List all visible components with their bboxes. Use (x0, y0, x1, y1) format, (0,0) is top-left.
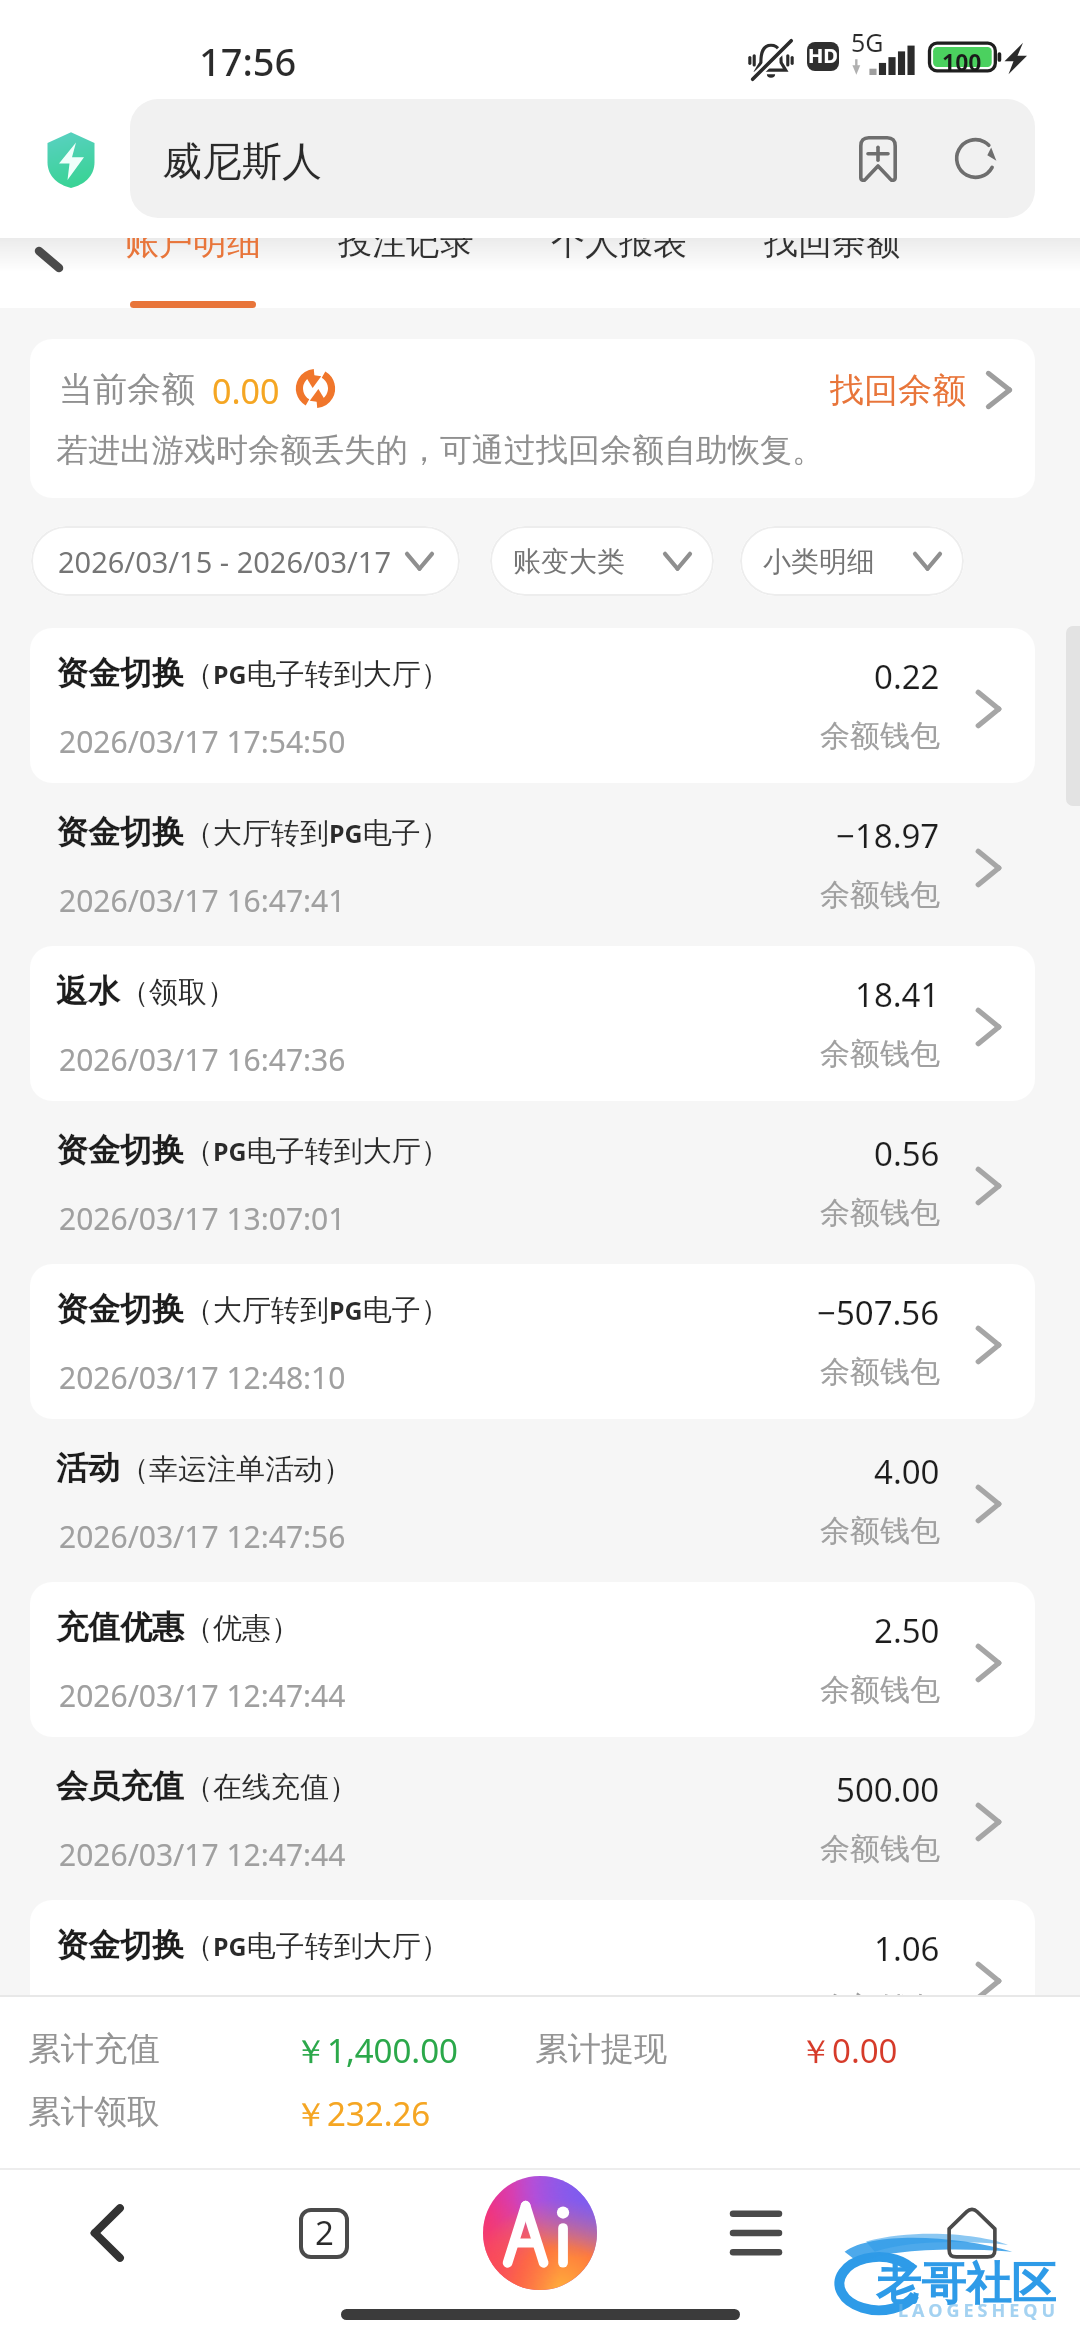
staticText: 充值优惠 (56, 1607, 184, 1647)
staticText: 找回余额 (830, 369, 966, 412)
staticText: 累计提现 (535, 2028, 667, 2070)
button[interactable]: 小类明细 (740, 526, 964, 596)
staticText: （在线充值） (184, 1769, 358, 1806)
staticText: 2026/03/15 - 2026/03/17 (58, 542, 391, 581)
button[interactable]: 活动 (30, 1423, 1035, 1578)
button[interactable]: 会员充值 (30, 1741, 1035, 1896)
button[interactable]: 威尼斯人 (130, 99, 1035, 218)
button[interactable]: 找回余额 (725, 238, 938, 291)
staticText: HD (808, 42, 838, 69)
button[interactable]: 资金切换 (30, 1105, 1035, 1260)
staticText: −18.97 (836, 813, 940, 858)
staticText: 资金切换 (56, 1925, 184, 1965)
button[interactable]: Add bookmark (833, 113, 923, 203)
button[interactable]: Refresh balance (292, 365, 339, 412)
staticText: 小类明细 (763, 544, 875, 579)
staticText: ￥0.00 (799, 2028, 898, 2073)
staticText: 当前余额 (59, 368, 195, 411)
staticText: ￥1,400.00 (294, 2028, 458, 2073)
button[interactable]: 返水 (30, 946, 1035, 1101)
staticText: 2026/03/17 12:47:44 (59, 1675, 346, 1716)
staticText: 5G (851, 25, 884, 59)
staticText: 2026/03/17 16:47:41 (59, 880, 346, 921)
staticText: 余额钱包 (820, 876, 940, 914)
staticText: 2026/03/17 16:47:36 (59, 1039, 346, 1080)
staticText: 个人报表 (551, 238, 687, 264)
staticText: 2026/03/17 12:47:56 (59, 1516, 346, 1557)
button[interactable]: Tabs (259, 2168, 389, 2298)
staticText: 余额钱包 (820, 717, 940, 755)
button[interactable]: 找回余额 (825, 361, 989, 417)
staticText: 找回余额 (764, 238, 900, 264)
staticText: 0.56 (874, 1131, 940, 1176)
staticText: （PG电子转到大厅） (184, 656, 450, 693)
staticText: 账户明细 (125, 238, 261, 264)
staticText: 资金切换 (56, 1130, 184, 1170)
staticText: 资金切换 (56, 1289, 184, 1329)
staticText: 余额钱包 (820, 1989, 940, 1995)
button[interactable]: Back (0, 238, 86, 291)
staticText: 4.00 (874, 1449, 940, 1494)
button[interactable]: 投注记录 (299, 238, 512, 291)
staticText: 资金切换 (56, 812, 184, 852)
button[interactable]: Refresh (930, 113, 1020, 203)
staticText: 500.00 (836, 1767, 940, 1812)
staticText: 资金切换 (56, 653, 184, 693)
button[interactable]: 账户明细 (86, 238, 299, 291)
button[interactable]: 资金切换 (30, 787, 1035, 942)
staticText: 余额钱包 (820, 1830, 940, 1868)
staticText: （大厅转到PG电子） (184, 815, 450, 852)
button[interactable]: 个人报表 (512, 238, 725, 291)
staticText: 2.50 (874, 1608, 940, 1653)
staticText: 累计领取 (28, 2091, 160, 2133)
staticText: 会员充值 (56, 1766, 184, 1806)
staticText: 17:56 (199, 35, 297, 87)
staticText: 余额钱包 (820, 1671, 940, 1709)
staticText: 返水 (56, 971, 120, 1011)
staticText: 2026/03/17 12:47:44 (59, 1834, 346, 1875)
button[interactable]: 2026/03/15 - 2026/03/17 (31, 526, 460, 596)
button[interactable]: Home (907, 2168, 1037, 2298)
staticText: 威尼斯人 (162, 136, 322, 186)
staticText: 2026/03/17 12:48:10 (59, 1357, 346, 1398)
staticText: （PG电子转到大厅） (184, 1133, 450, 1170)
button[interactable]: Back (42, 2168, 172, 2298)
staticText: 0.22 (874, 654, 940, 699)
button[interactable]: 资金切换 (30, 1264, 1035, 1419)
staticText: （领取） (120, 974, 236, 1011)
button[interactable]: Menu (691, 2168, 821, 2298)
staticText: 余额钱包 (820, 1512, 940, 1550)
staticText: （大厅转到PG电子） (184, 1292, 450, 1329)
staticText: 账变大类 (513, 544, 625, 579)
staticText: 0.00 (212, 368, 280, 414)
button[interactable]: 资金切换 (30, 628, 1035, 783)
button[interactable]: 当前余额 (30, 339, 1035, 498)
staticText: （幸运注单活动） (120, 1451, 352, 1488)
staticText: 100 (942, 46, 982, 77)
staticText: （PG电子转到大厅） (184, 1928, 450, 1965)
button[interactable]: 资金切换 (30, 1900, 1035, 1995)
staticText: 累计充值 (28, 2028, 160, 2070)
button[interactable]: 账变大类 (490, 526, 714, 596)
staticText: −507.56 (817, 1290, 940, 1335)
staticText: 若进出游戏时余额丢失的，可通过找回余额自助恢复。 (56, 430, 824, 470)
staticText: 活动 (56, 1448, 120, 1488)
staticText: 老哥社区 (876, 2256, 1056, 2313)
staticText: 余额钱包 (820, 1035, 940, 1073)
staticText: 投注记录 (338, 238, 474, 264)
staticText: 2026/03/17 17:54:50 (59, 721, 346, 762)
staticText: 余额钱包 (820, 1194, 940, 1232)
staticText: ￥232.26 (294, 2091, 431, 2136)
staticText: 2 (315, 2210, 334, 2255)
staticText: 1.06 (874, 1926, 940, 1971)
button[interactable]: AI assistant (475, 2168, 605, 2298)
staticText: LAOGESHEQU (898, 2298, 1060, 2323)
button[interactable]: 充值优惠 (30, 1582, 1035, 1737)
staticText: 18.41 (855, 972, 940, 1017)
staticText: 余额钱包 (820, 1353, 940, 1391)
staticText: （优惠） (184, 1610, 300, 1647)
staticText: 2026/03/17 13:07:01 (59, 1198, 346, 1239)
